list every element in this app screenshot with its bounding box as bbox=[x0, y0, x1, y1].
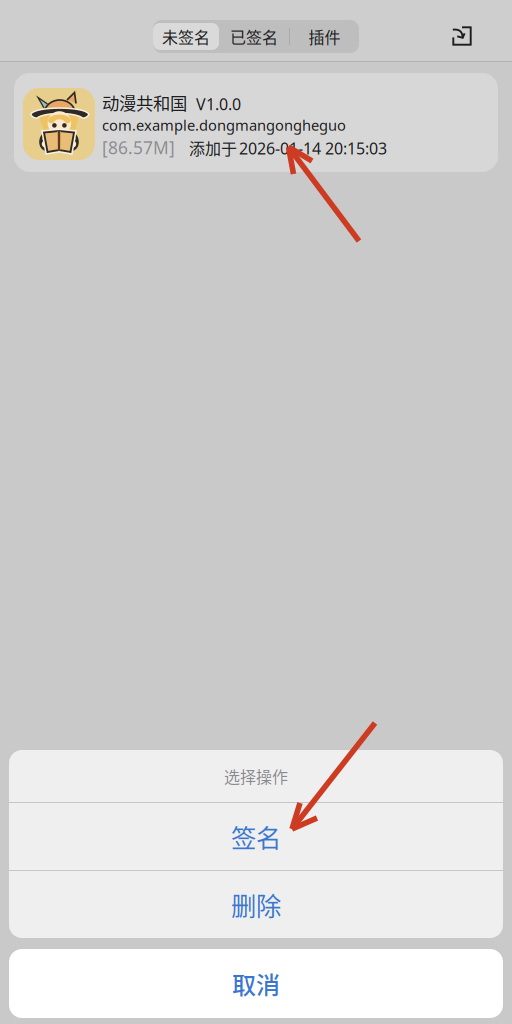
staticText: [86.57M] bbox=[102, 136, 175, 159]
staticText: 选择操作 bbox=[224, 764, 288, 788]
staticText: V1.0.0 bbox=[196, 93, 241, 115]
staticText: 已签名 bbox=[230, 25, 278, 48]
staticText: 删除 bbox=[231, 886, 281, 923]
button[interactable]: Import app bbox=[442, 22, 482, 50]
staticText: 未签名 bbox=[162, 25, 210, 48]
button[interactable]: 签名 bbox=[9, 803, 503, 870]
staticText: 动漫共和国 bbox=[102, 90, 187, 115]
staticText: com.example.dongmangongheguo bbox=[102, 115, 346, 135]
staticText: 插件 bbox=[308, 25, 340, 48]
button[interactable]: 取消 bbox=[9, 949, 503, 1018]
button[interactable]: 删除 bbox=[9, 871, 503, 938]
button[interactable]: 插件 bbox=[290, 23, 359, 50]
staticText: 添加于 bbox=[189, 136, 237, 159]
staticText: 签名 bbox=[231, 818, 281, 855]
button[interactable]: 已签名 bbox=[219, 23, 289, 50]
button[interactable]: 未签名 bbox=[153, 23, 219, 50]
staticText: 取消 bbox=[232, 966, 280, 1001]
staticText: 2026-01-14 20:15:03 bbox=[239, 137, 387, 159]
